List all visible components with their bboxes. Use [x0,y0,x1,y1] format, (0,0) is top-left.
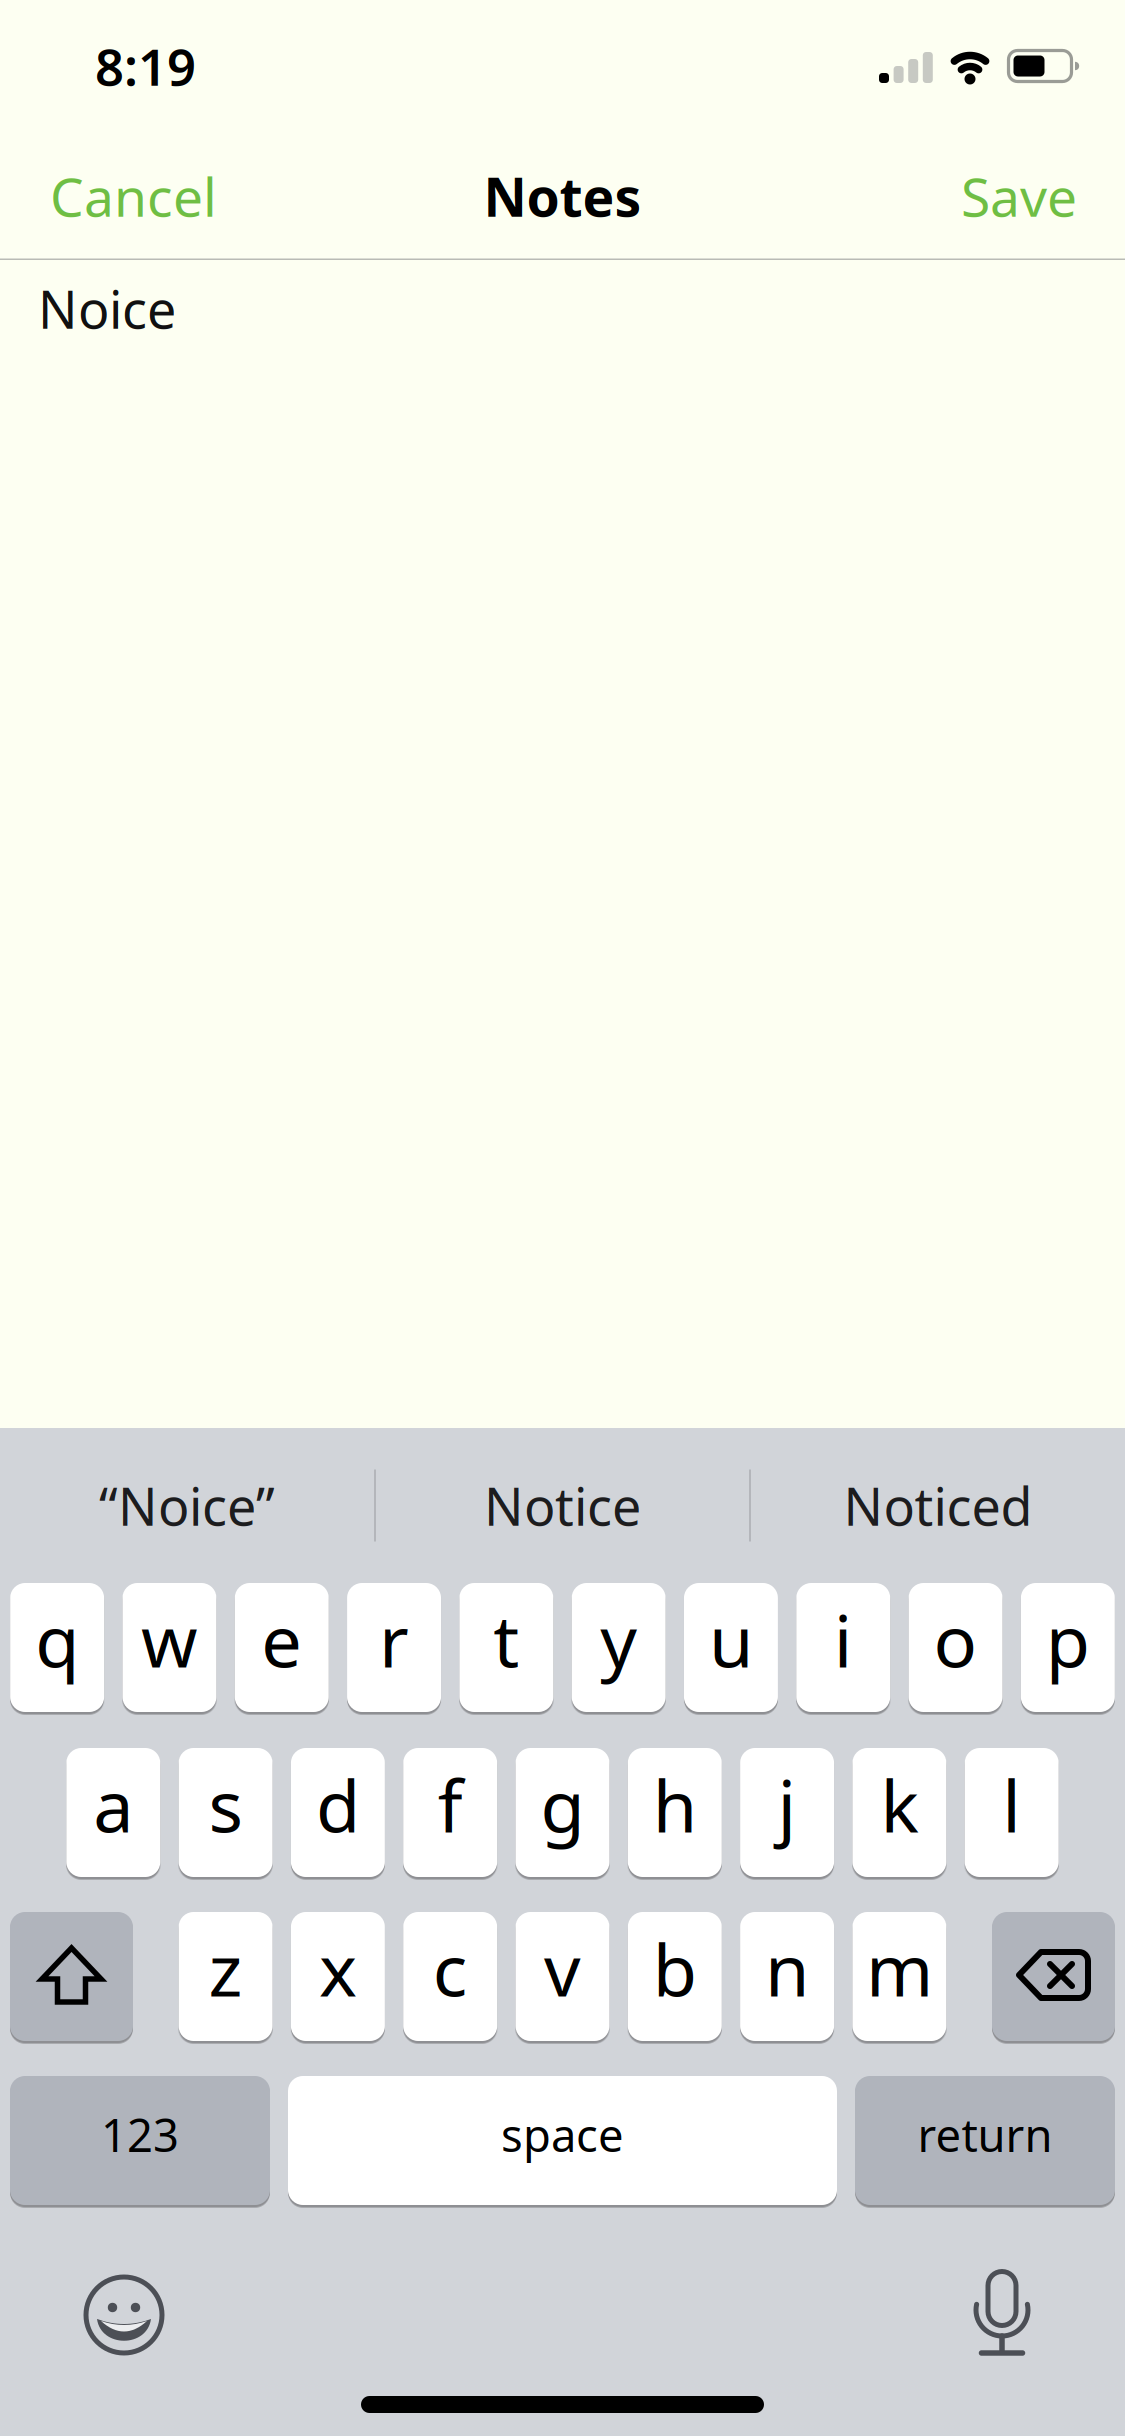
button[interactable]: q [10,1583,104,1712]
staticText: z [209,1921,243,2016]
staticText: g [540,1757,584,1852]
button[interactable]: w [122,1583,216,1712]
staticText: 8:19 [95,32,196,100]
button[interactable]: 123 [10,2076,270,2205]
button[interactable]: m [852,1912,946,2041]
staticText: 123 [101,2104,179,2165]
staticText: s [209,1757,243,1852]
button[interactable]: d [291,1748,385,1877]
button[interactable]: x [291,1912,385,2041]
button[interactable]: l [965,1748,1059,1877]
button[interactable]: v [515,1912,609,2041]
button[interactable]: return [855,2076,1115,2205]
staticText: y [600,1592,637,1687]
button[interactable]: r [347,1583,441,1712]
staticText: h [653,1757,697,1852]
staticText: Save [961,161,1077,231]
staticText: Notes [483,161,641,231]
button[interactable]: g [515,1748,609,1877]
button[interactable]: j [740,1748,834,1877]
staticText: n [765,1921,809,2016]
staticText: “Noice” [99,1471,275,1540]
button[interactable]: n [740,1912,834,2041]
staticText: b [653,1921,697,2016]
staticText: e [261,1592,302,1687]
staticText: Noice [38,274,176,343]
button[interactable]: Save [961,161,1125,231]
staticText: f [438,1757,463,1852]
staticText: x [319,1921,357,2016]
button[interactable]: i [796,1583,890,1712]
button[interactable]: p [1021,1583,1115,1712]
staticText: d [316,1757,360,1852]
button[interactable]: h [628,1748,722,1877]
staticText: w [141,1592,198,1687]
button[interactable]: k [852,1748,946,1877]
button[interactable]: Dictation [970,2269,1034,2359]
button[interactable]: Emoji [81,2272,167,2358]
staticText: j [778,1757,797,1852]
staticText: v [544,1921,581,2016]
staticText: k [880,1757,918,1852]
button[interactable]: b [628,1912,722,2041]
staticText: return [917,2104,1052,2165]
button[interactable]: space [288,2076,837,2205]
staticText: r [379,1592,409,1687]
button[interactable]: e [235,1583,329,1712]
button[interactable]: o [908,1583,1002,1712]
button[interactable]: t [459,1583,553,1712]
staticText: space [501,2104,624,2165]
staticText: Noticed [843,1471,1032,1540]
button[interactable]: y [572,1583,666,1712]
button[interactable]: Noticed [751,1428,1125,1583]
staticText: m [866,1921,933,2016]
button[interactable]: a [66,1748,160,1877]
button[interactable]: s [179,1748,273,1877]
button[interactable]: u [684,1583,778,1712]
staticText: i [834,1592,853,1687]
button[interactable]: Notice [376,1428,749,1583]
button[interactable]: f [403,1748,497,1877]
staticText: c [433,1921,468,2016]
staticText: q [35,1592,79,1687]
button[interactable]: “Noice” [0,1428,374,1583]
button[interactable]: Delete [992,1912,1115,2041]
button[interactable]: Cancel [0,161,217,231]
button[interactable]: c [403,1912,497,2041]
button[interactable]: z [179,1912,273,2041]
staticText: a [93,1757,133,1852]
staticText: Cancel [50,161,217,231]
staticText: p [1046,1592,1090,1687]
staticText: Notice [484,1471,641,1540]
staticText: o [933,1592,977,1687]
staticText: u [709,1592,753,1687]
staticText: l [1002,1757,1021,1852]
button[interactable]: Shift [10,1912,133,2041]
staticText: t [493,1592,519,1687]
